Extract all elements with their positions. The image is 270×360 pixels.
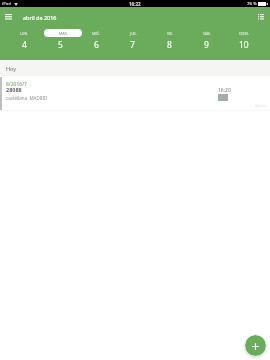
staticText: 9 xyxy=(204,39,209,51)
button[interactable]: MIÉ. xyxy=(78,28,114,60)
staticText: 16:20 xyxy=(218,87,231,94)
button[interactable]: SÁB. xyxy=(188,28,225,60)
button[interactable]: 8/2016/7 xyxy=(0,76,270,111)
staticText: 28088 xyxy=(6,86,22,93)
button[interactable]: DOM. xyxy=(225,28,262,60)
staticText: 10 xyxy=(239,39,249,51)
button[interactable]: Agenda view xyxy=(258,6,264,27)
staticText: iPad xyxy=(2,1,12,7)
staticText: JUE. xyxy=(130,31,137,36)
staticText: Hoy xyxy=(6,65,17,72)
button[interactable]: MAR. xyxy=(42,28,78,60)
staticText: 8 xyxy=(167,39,172,51)
button[interactable]: VIE. xyxy=(151,28,188,60)
staticText: 16:22 xyxy=(129,1,141,7)
staticText: 7 xyxy=(130,39,135,51)
button[interactable]: JUE. xyxy=(114,28,151,60)
staticText: abril de 2016 xyxy=(23,14,57,21)
staticText: 8/2016/7 xyxy=(6,81,27,88)
button[interactable]: LUN. xyxy=(6,28,42,60)
staticText: Borrar xyxy=(255,103,266,108)
button[interactable]: Menu xyxy=(5,6,12,27)
staticText: 6 xyxy=(94,39,99,51)
staticText: LUN. xyxy=(20,31,29,36)
staticText: VIE. xyxy=(167,31,174,36)
staticText: 4 xyxy=(22,39,27,51)
button[interactable]: Add event xyxy=(245,335,266,356)
staticText: MAR. xyxy=(59,31,68,36)
staticText: DOM. xyxy=(239,31,249,36)
staticText: SÁB. xyxy=(203,31,211,36)
staticText: MIÉ. xyxy=(92,31,100,36)
staticText: 76 % xyxy=(247,1,257,7)
staticText: castellana MADRID xyxy=(6,95,48,101)
staticText: 5 xyxy=(58,39,63,51)
